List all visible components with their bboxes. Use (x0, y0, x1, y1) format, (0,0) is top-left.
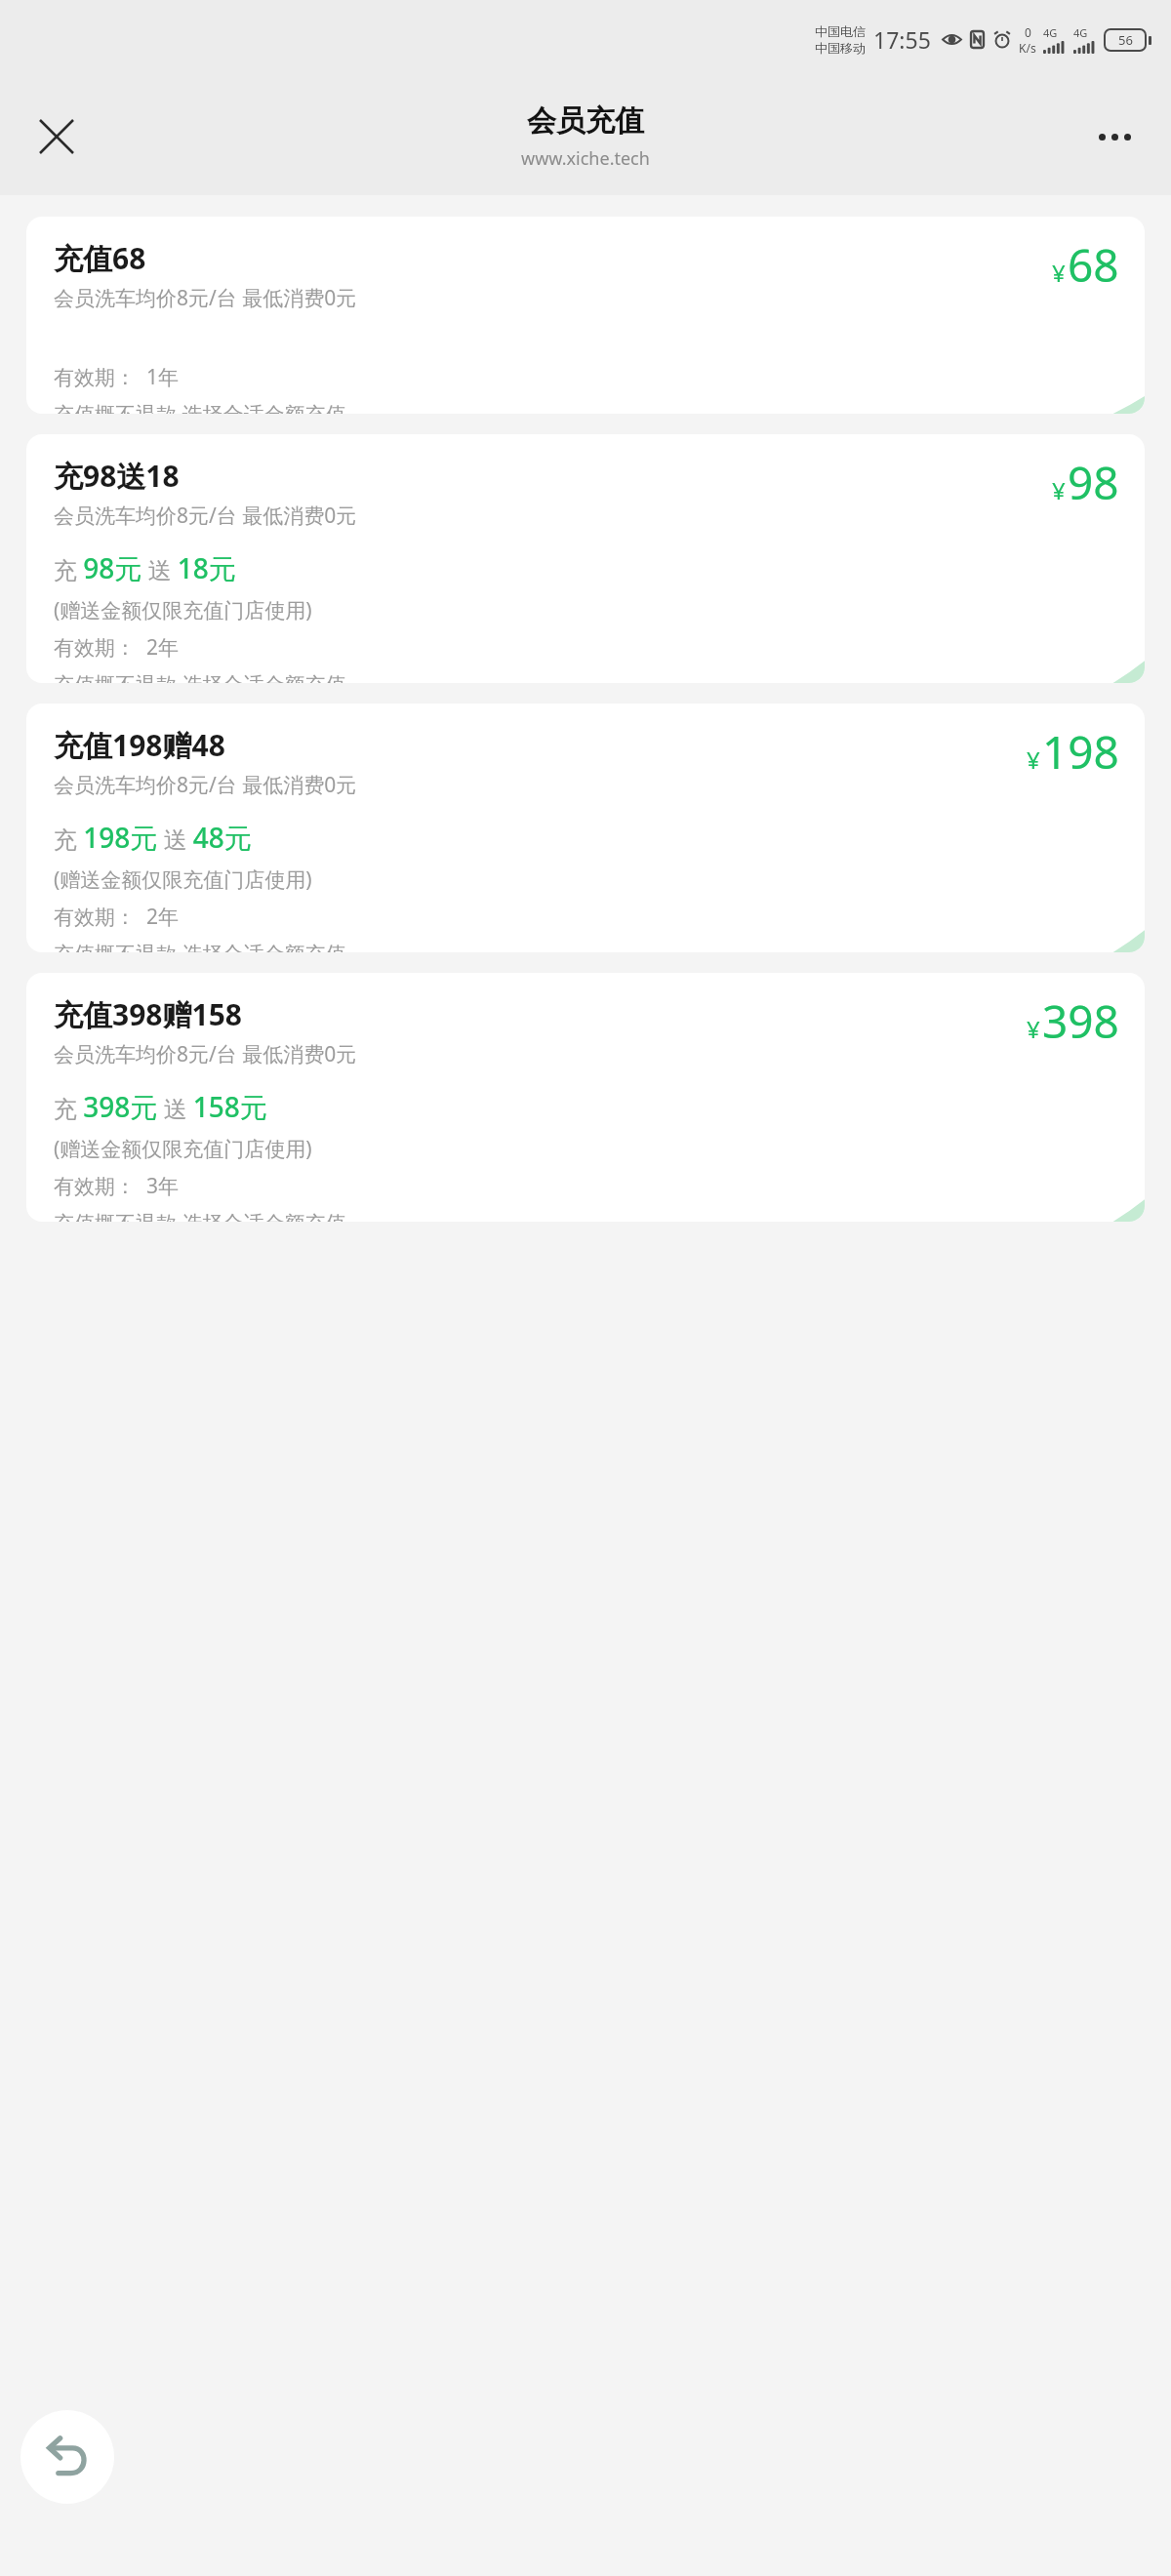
staticText: ¥ (1027, 1013, 1040, 1045)
staticText: K/s (1019, 40, 1036, 56)
staticText: 充98送18 (54, 456, 180, 496)
staticText: 中国移动 (815, 40, 866, 56)
staticText: 充 198元 送 48元 (54, 819, 252, 856)
staticText: www.xiche.tech (521, 146, 650, 171)
staticText: 有效期： 1年 (54, 363, 179, 391)
staticText: 68 (1068, 234, 1119, 296)
button[interactable]: Back (20, 2410, 114, 2504)
staticText: 充值概不退款 选择合适金额充值 (54, 400, 346, 414)
staticText: 有效期： 2年 (54, 903, 179, 931)
button[interactable]: More options (1079, 101, 1150, 172)
button[interactable]: Close (21, 101, 92, 172)
staticText: ¥ (1052, 257, 1066, 289)
staticText: 充值概不退款 选择合适金额充值 (54, 670, 346, 683)
staticText: 有效期： 2年 (54, 633, 179, 662)
staticText: (赠送金额仅限充值门店使用) (54, 865, 312, 894)
staticText: 会员洗车均价8元/台 最低消费0元 (54, 771, 357, 799)
staticText: 充值198赠48 (54, 725, 225, 765)
button[interactable]: 充值398赠158 (26, 973, 1145, 1222)
staticText: 充值68 (54, 238, 146, 278)
staticText: 充 398元 送 158元 (54, 1088, 267, 1125)
button[interactable]: 充98送18 (26, 434, 1145, 683)
staticText: 98 (1068, 452, 1119, 513)
button[interactable]: 充值68 (26, 217, 1145, 414)
staticText: ¥ (1052, 474, 1066, 506)
staticText: 中国电信 (815, 23, 866, 39)
staticText: 398 (1042, 990, 1119, 1052)
staticText: (赠送金额仅限充值门店使用) (54, 596, 312, 624)
staticText: 充值概不退款 选择合适金额充值 (54, 940, 346, 952)
staticText: 0 (1025, 24, 1031, 40)
button[interactable]: 充值198赠48 (26, 704, 1145, 952)
staticText: (赠送金额仅限充值门店使用) (54, 1135, 312, 1163)
staticText: 会员洗车均价8元/台 最低消费0元 (54, 284, 357, 312)
staticText: 充值398赠158 (54, 994, 242, 1034)
staticText: 4G (1073, 25, 1088, 40)
staticText: 会员洗车均价8元/台 最低消费0元 (54, 1040, 357, 1068)
staticText: 56 (1118, 31, 1133, 49)
staticText: 充值概不退款 选择合适金额充值 (54, 1209, 346, 1222)
staticText: 有效期： 3年 (54, 1172, 179, 1200)
staticText: 198 (1042, 721, 1119, 783)
staticText: 17:55 (873, 24, 931, 55)
staticText: 会员洗车均价8元/台 最低消费0元 (54, 502, 357, 530)
staticText: 充 98元 送 18元 (54, 549, 236, 586)
staticText: 会员充值 (527, 102, 644, 140)
staticText: ¥ (1027, 744, 1040, 776)
staticText: 4G (1043, 25, 1058, 40)
